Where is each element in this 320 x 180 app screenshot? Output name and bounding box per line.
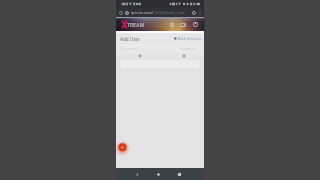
button[interactable]: Username [138,54,142,58]
staticText: Password [180,46,196,51]
button[interactable]: Back to Users [174,36,201,41]
staticText: Username [121,46,138,51]
button[interactable]: Menu [168,21,175,28]
button[interactable]: Account [192,21,199,28]
button[interactable]: Password [182,54,186,58]
button[interactable]: Recents [175,170,184,179]
staticText: iptv.to.com/ [131,10,154,15]
staticText: Add User [120,36,140,42]
staticText: 12345/user_new [154,10,185,15]
button[interactable]: More options [197,10,202,15]
button[interactable]: Add user [117,141,130,154]
button[interactable]: Tabs [191,10,197,16]
staticText: TREAM [127,22,145,28]
button[interactable]: Home [154,170,163,179]
button[interactable]: Live TV [180,21,187,28]
button[interactable]: Back [133,170,142,179]
staticText: Back to Users [178,36,201,41]
button[interactable]: Reload [118,10,124,16]
